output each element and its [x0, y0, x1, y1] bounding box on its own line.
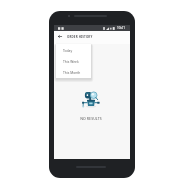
- staticText: Today: [63, 48, 73, 52]
- staticText: NO RESULTS: [80, 116, 102, 121]
- button[interactable]: This Week: [56, 55, 91, 66]
- button[interactable]: Today: [56, 44, 91, 55]
- staticText: This Week: [63, 59, 79, 63]
- button[interactable]: This Month: [56, 66, 91, 77]
- staticText: ORDER HISTORY: [67, 35, 93, 39]
- button[interactable]: Back: [56, 33, 63, 40]
- staticText: This Month: [63, 70, 81, 74]
- staticText: 10:41: [117, 26, 125, 30]
